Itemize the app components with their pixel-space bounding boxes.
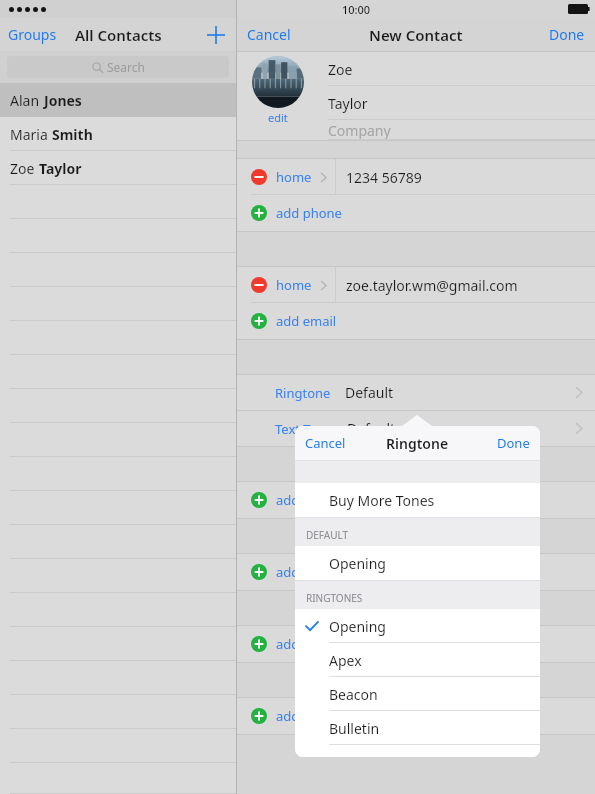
button[interactable]: Done [539,20,595,49]
staticText: edit [268,110,288,125]
staticText: All Contacts [75,25,162,45]
staticText: Opening [329,554,386,573]
staticText: zoe.taylor.wm@gmail.com [346,276,518,295]
button[interactable]: add url [237,482,595,518]
button[interactable]: Opening [295,546,540,580]
button[interactable]: add address [237,554,595,590]
staticText: Ringtone [386,434,449,453]
staticText: Beacon [329,685,378,704]
staticText: Done [497,434,530,452]
staticText: Cancel [247,25,291,44]
button[interactable]: Opening [295,609,540,643]
button[interactable]: Zoe [0,151,236,185]
staticText: Done [549,25,585,44]
staticText: 10:00 [342,2,371,17]
staticText: add date [276,707,330,725]
button[interactable]: Bulletin [295,711,540,745]
staticText: Company [328,121,391,140]
button[interactable]: add email [237,303,595,339]
staticText: Bulletin [329,719,380,738]
button[interactable]: Text Tone [237,411,595,446]
staticText: RINGTONES [306,591,363,605]
button[interactable]: add date [237,698,595,734]
staticText: 1234 56789 [346,168,422,187]
staticText: Alan [10,91,40,110]
staticText: Maria [10,125,48,144]
button[interactable]: Taylor [319,86,595,120]
other: Remove [251,277,267,293]
staticText: Default [347,419,396,438]
staticText: Search [107,59,145,75]
button[interactable]: Buy More Tones [295,483,540,517]
staticText: home [276,276,312,294]
button[interactable]: Zoe [319,52,595,86]
staticText: add email [276,312,337,330]
button[interactable]: Add contact [196,23,236,47]
button[interactable]: add birthday [237,626,595,662]
button[interactable]: edit [262,109,294,126]
staticText: Cancel [305,434,346,452]
staticText: Zoe [328,60,353,79]
staticText: Taylor [39,159,82,178]
staticText: DEFAULT [306,528,349,542]
other: Remove [251,169,267,185]
staticText: add birthday [276,635,355,653]
staticText: New Contact [369,25,463,45]
button[interactable]: Remove [237,159,595,195]
staticText: Taylor [328,94,368,113]
button[interactable]: Alan [0,83,236,117]
button[interactable]: Ringtone [237,375,595,410]
staticText: Groups [8,25,57,44]
staticText: add address [276,563,351,581]
staticText: Smith [52,125,93,144]
staticText: Opening [329,617,386,636]
staticText: Buy More Tones [329,491,435,510]
button[interactable]: Done [487,429,540,457]
staticText: add url [276,491,320,509]
button[interactable]: Apex [295,643,540,677]
button[interactable]: Cancel [295,429,356,457]
staticText: Jones [44,91,82,110]
button[interactable]: Company [319,120,595,140]
button[interactable]: Remove [237,267,595,303]
button[interactable]: add phone [237,195,595,231]
staticText: Zoe [10,159,35,178]
staticText: Ringtone [275,384,331,402]
button[interactable]: Maria [0,117,236,151]
staticText: Default [345,383,394,402]
button[interactable]: Groups [0,21,65,48]
staticText: Text Tone [275,420,333,438]
button[interactable]: Cancel [237,20,301,49]
button[interactable]: Beacon [295,677,540,711]
staticText [40,91,44,110]
button[interactable]: Search [7,56,229,78]
button[interactable]: Contact photo [252,56,304,108]
staticText: home [276,168,312,186]
staticText: Apex [329,651,362,670]
staticText: add phone [276,204,342,222]
